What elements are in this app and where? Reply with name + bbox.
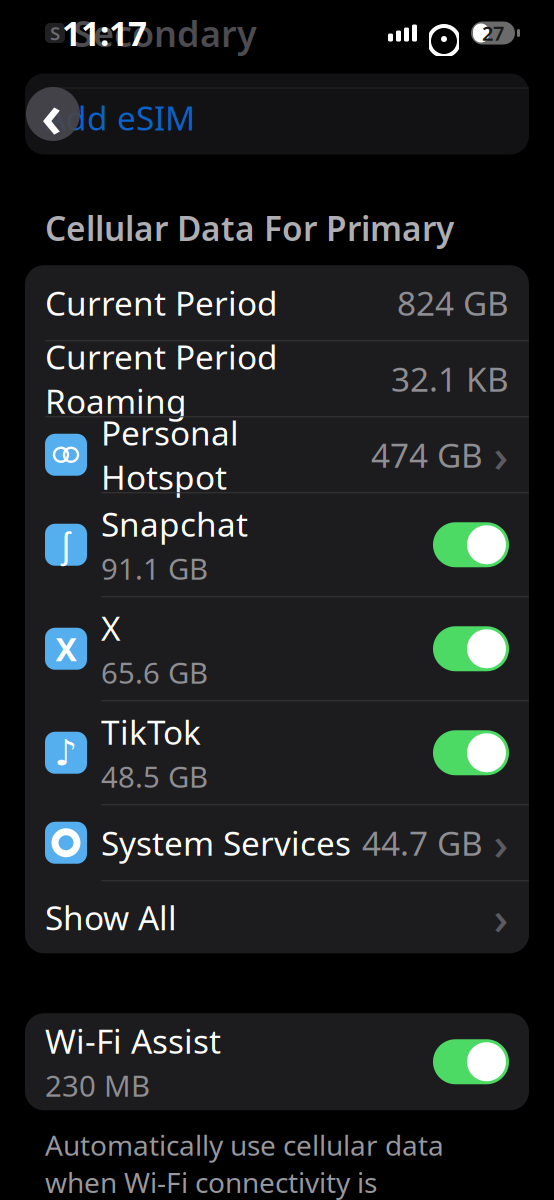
staticText: ʃ — [61, 522, 70, 568]
staticText: 65.6 GB — [101, 653, 208, 692]
staticText: › — [493, 813, 508, 873]
button[interactable]: Wi-Fi Assist — [25, 1013, 529, 1110]
staticText: Wi-Fi Assist — [45, 1019, 221, 1063]
staticText: Secondary — [73, 9, 257, 57]
staticText: 824 GB — [397, 281, 509, 325]
staticText: System Services — [101, 821, 351, 865]
button[interactable]: ʃ — [25, 493, 529, 596]
staticText: Snapchat — [101, 502, 248, 546]
staticText: Personal Hotspot — [101, 410, 239, 499]
button[interactable]: System Services — [25, 805, 529, 880]
staticText: Automatically use cellular data when Wi-… — [45, 1126, 444, 1200]
staticText: 230 MB — [45, 1066, 150, 1105]
staticText: 44.7 GB — [362, 821, 483, 865]
staticText: Add eSIM — [45, 95, 195, 140]
staticText: TikTok — [101, 710, 201, 754]
button[interactable]: Personal Hotspot — [25, 417, 529, 492]
staticText: Cellular Data For Primary — [45, 206, 454, 250]
staticText: ♪ — [54, 732, 77, 773]
staticText: ‹ — [41, 73, 62, 155]
staticText: X — [101, 606, 121, 650]
button[interactable]: ♪ — [25, 701, 529, 804]
button[interactable]: Current Period Roaming — [25, 341, 529, 416]
staticText: › — [493, 425, 508, 485]
staticText: 11:17 — [62, 11, 147, 55]
staticText: 27 — [482, 20, 504, 46]
staticText: Show All — [45, 895, 177, 939]
staticText: X — [55, 627, 76, 670]
staticText: S — [50, 21, 60, 45]
staticText: 48.5 GB — [101, 757, 208, 796]
button[interactable]: X — [25, 597, 529, 700]
staticText: › — [493, 887, 508, 947]
button[interactable]: Back — [26, 87, 80, 141]
staticText: 32.1 KB — [391, 357, 509, 401]
staticText: 91.1 GB — [101, 549, 208, 588]
staticText: Current Period Roaming — [45, 334, 278, 423]
button[interactable]: Current Period — [25, 265, 529, 340]
staticText: Current Period — [45, 281, 278, 325]
staticText: 474 GB — [371, 433, 483, 477]
button[interactable]: Show All — [25, 881, 529, 953]
